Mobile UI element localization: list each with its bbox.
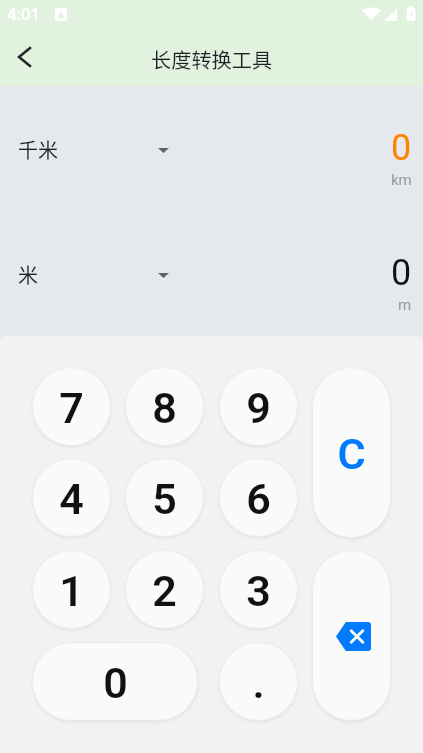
staticText: .: [252, 658, 265, 708]
staticText: 0: [391, 252, 412, 294]
button[interactable]: 8: [125, 367, 204, 446]
staticText: 4:01: [7, 4, 41, 24]
staticText: km: [391, 171, 412, 189]
staticText: m: [398, 296, 412, 314]
staticText: 8: [152, 383, 177, 433]
staticText: 5: [152, 474, 177, 524]
button[interactable]: 1: [32, 550, 111, 629]
staticText: C: [337, 429, 366, 479]
staticText: 7: [59, 383, 84, 433]
staticText: 3: [246, 566, 271, 616]
staticText: 千米: [18, 135, 58, 164]
staticText: 0: [391, 127, 412, 169]
staticText: 长度转换工具: [151, 45, 273, 74]
staticText: 米: [18, 260, 38, 289]
button[interactable]: 0: [32, 642, 198, 721]
button[interactable]: 5: [125, 458, 204, 537]
button[interactable]: Backspace: [312, 550, 391, 721]
button[interactable]: 4: [32, 458, 111, 537]
staticText: 6: [246, 474, 271, 524]
button[interactable]: .: [219, 642, 298, 721]
button[interactable]: Back: [0, 33, 48, 81]
button[interactable]: 9: [219, 367, 298, 446]
staticText: 0: [103, 658, 128, 708]
button[interactable]: 6: [219, 458, 298, 537]
button[interactable]: 3: [219, 550, 298, 629]
button[interactable]: 米: [0, 211, 423, 336]
staticText: 9: [246, 383, 271, 433]
button[interactable]: 7: [32, 367, 111, 446]
button[interactable]: 千米: [0, 86, 423, 211]
button[interactable]: 2: [125, 550, 204, 629]
staticText: 2: [152, 566, 177, 616]
staticText: 1: [59, 566, 84, 616]
staticText: 4: [59, 474, 84, 524]
button[interactable]: C: [312, 367, 391, 538]
